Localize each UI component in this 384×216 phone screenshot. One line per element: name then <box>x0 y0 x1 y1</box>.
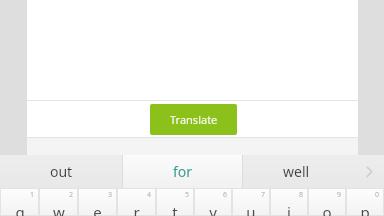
staticText: p <box>360 202 370 216</box>
staticText: Translate <box>170 112 218 127</box>
staticText: o <box>322 202 332 216</box>
button[interactable]: 5 <box>157 189 193 215</box>
staticText: 7 <box>260 190 265 200</box>
staticText: 9 <box>336 190 341 200</box>
staticText: q <box>15 202 25 216</box>
staticText: 5 <box>184 190 189 200</box>
button[interactable]: 4 <box>118 189 155 215</box>
button[interactable]: More suggestions <box>356 155 384 188</box>
staticText: i <box>287 202 291 216</box>
staticText: 0 <box>374 190 379 200</box>
button[interactable]: well <box>243 155 384 188</box>
staticText: out <box>50 162 73 181</box>
staticText: 3 <box>107 190 112 200</box>
staticText: 6 <box>222 190 227 200</box>
staticText: for <box>173 162 193 181</box>
button[interactable]: for <box>123 155 242 188</box>
staticText: 4 <box>146 190 151 200</box>
staticText: 2 <box>68 190 73 200</box>
button[interactable]: Translate <box>150 104 237 135</box>
staticText: r <box>133 202 140 216</box>
button[interactable]: 9 <box>309 189 345 215</box>
staticText: e <box>93 202 102 216</box>
button[interactable]: 7 <box>233 189 269 215</box>
staticText: y <box>209 202 217 216</box>
staticText: t <box>172 202 178 216</box>
button[interactable]: out <box>0 155 122 188</box>
button[interactable]: 6 <box>195 189 231 215</box>
button[interactable]: 2 <box>40 189 77 215</box>
button[interactable]: 3 <box>79 189 116 215</box>
staticText: u <box>246 202 256 216</box>
staticText: w <box>53 202 65 216</box>
staticText: well <box>283 162 310 181</box>
button[interactable]: 0 <box>347 189 383 215</box>
staticText: 1 <box>29 190 34 200</box>
staticText: 8 <box>298 190 303 200</box>
button[interactable]: 1 <box>1 189 38 215</box>
button[interactable]: 8 <box>271 189 307 215</box>
